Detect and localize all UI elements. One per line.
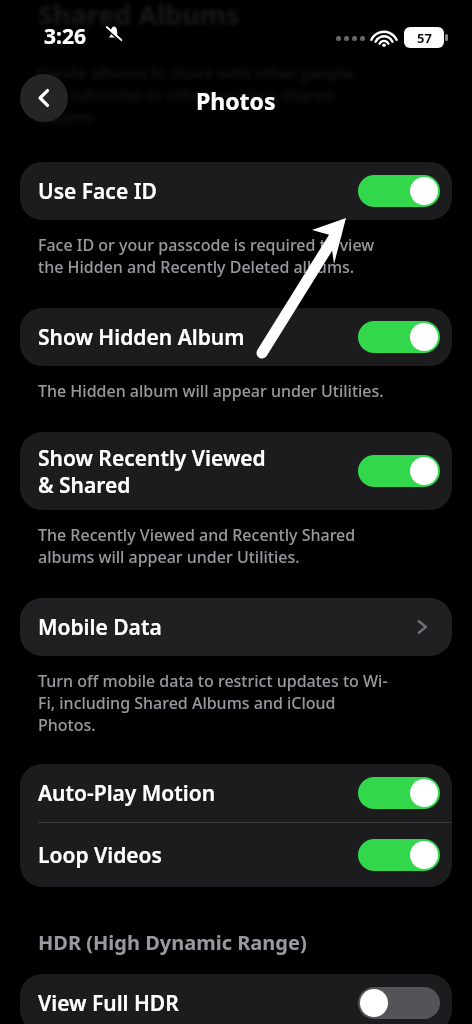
button[interactable]: Off bbox=[358, 987, 440, 1019]
staticText: The Hidden album will appear under Utili… bbox=[38, 380, 384, 402]
staticText: Show Recently Viewed & Shared bbox=[38, 444, 266, 499]
button[interactable]: Loop Videos bbox=[20, 823, 452, 887]
button[interactable]: Auto-Play Motion bbox=[20, 764, 452, 822]
staticText: The Recently Viewed and Recently Shared … bbox=[38, 524, 356, 568]
button[interactable]: Back bbox=[20, 74, 68, 122]
button[interactable]: Show Hidden Album bbox=[20, 308, 452, 366]
button[interactable]: On bbox=[358, 175, 440, 207]
staticText: Auto-Play Motion bbox=[38, 779, 216, 808]
staticText: Create albums to share with other people… bbox=[36, 62, 359, 128]
button[interactable]: On bbox=[358, 777, 440, 809]
button[interactable]: View Full HDR bbox=[20, 974, 452, 1024]
staticText: 57 bbox=[417, 29, 432, 47]
button[interactable]: Mobile Data bbox=[20, 598, 452, 656]
button[interactable]: On bbox=[358, 839, 440, 871]
staticText: Loop Videos bbox=[38, 841, 162, 870]
staticText: 3:26 bbox=[44, 22, 86, 51]
staticText: Turn off mobile data to restrict updates… bbox=[38, 670, 388, 736]
staticText: Photos bbox=[196, 85, 276, 116]
staticText: HDR (High Dynamic Range) bbox=[38, 929, 307, 956]
staticText: Show Hidden Album bbox=[38, 323, 245, 352]
staticText: Face ID or your passcode is required to … bbox=[38, 234, 375, 278]
staticText: Shared Albums bbox=[38, 0, 240, 33]
staticText: View Full HDR bbox=[38, 989, 179, 1018]
button[interactable]: On bbox=[358, 321, 440, 353]
staticText: Use Face ID bbox=[38, 177, 157, 206]
button[interactable]: Show Recently Viewed & Shared bbox=[20, 432, 452, 510]
button[interactable]: On bbox=[358, 455, 440, 487]
button[interactable]: Use Face ID bbox=[20, 162, 452, 220]
staticText: Mobile Data bbox=[38, 613, 162, 642]
